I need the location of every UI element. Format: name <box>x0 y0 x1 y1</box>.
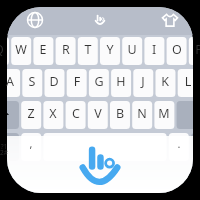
staticText: D <box>43 73 65 99</box>
staticText: T <box>77 41 99 67</box>
staticText: B <box>109 105 131 131</box>
staticText: Q <box>0 41 10 67</box>
staticText: M <box>153 105 175 131</box>
staticText: C <box>65 105 87 131</box>
staticText: O <box>166 41 188 67</box>
staticText: F <box>66 73 88 99</box>
staticText: Y <box>99 41 121 67</box>
staticText: R <box>55 41 77 67</box>
staticText: L <box>177 73 199 99</box>
staticText: P <box>188 41 200 67</box>
staticText: K <box>154 73 176 99</box>
staticText: ?1 2# <box>0 142 15 156</box>
staticText: . <box>168 136 190 159</box>
staticText: , <box>20 136 42 159</box>
staticText: E <box>32 41 54 67</box>
button[interactable]: TouchPal keyboard app icon <box>0 0 200 200</box>
staticText: S <box>21 73 43 99</box>
staticText: Z <box>20 105 42 131</box>
staticText: U <box>121 41 143 67</box>
staticText: W <box>10 41 32 67</box>
staticText: I <box>143 41 165 67</box>
staticText: V <box>87 105 109 131</box>
staticText: G <box>88 73 110 99</box>
staticText: J <box>132 73 154 99</box>
staticText: H <box>110 73 132 99</box>
staticText: N <box>131 105 153 131</box>
staticText: X <box>42 105 64 131</box>
staticText: A <box>0 73 21 99</box>
